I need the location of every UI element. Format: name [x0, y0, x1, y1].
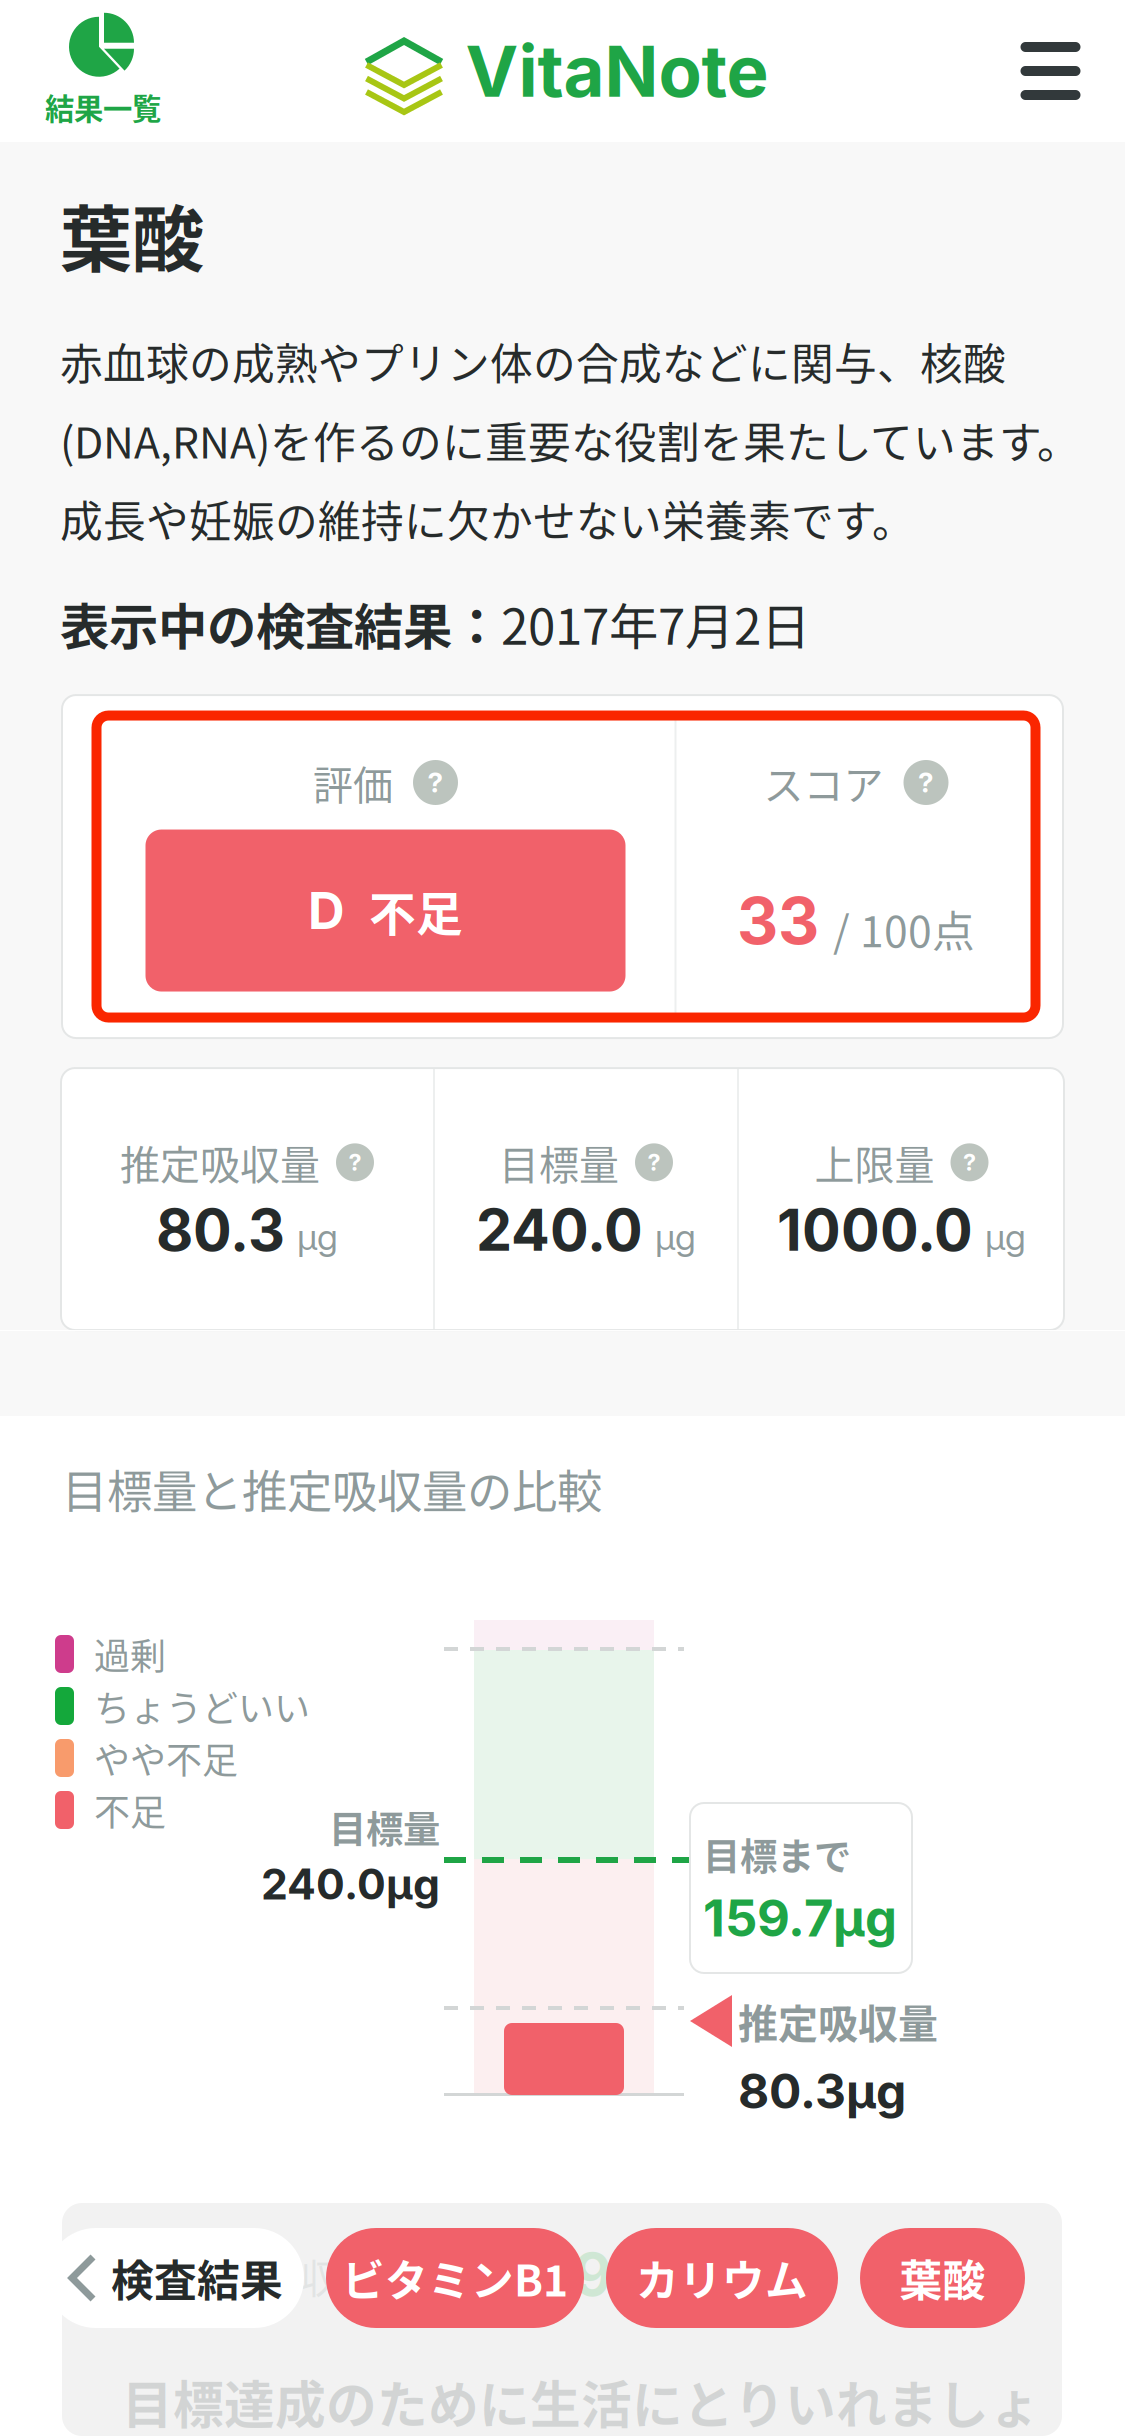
- staticText: 結果一覧: [45, 86, 161, 128]
- staticText: 80.3: [156, 1195, 285, 1265]
- staticText: 評価: [313, 753, 393, 811]
- staticText: 目標量と推定吸収量の比較: [62, 1456, 602, 1522]
- staticText: 葉酸: [899, 2247, 985, 2309]
- staticText: ?: [963, 1148, 976, 1176]
- staticText: 1000.0: [777, 1195, 973, 1265]
- staticText: 不足: [94, 1784, 166, 1836]
- button[interactable]: ビタミンB1: [326, 2228, 584, 2328]
- staticText: 成長や妊娠の維持に欠かせない栄養素です。: [60, 488, 915, 550]
- staticText: 目標量: [499, 1133, 619, 1191]
- staticText: ?: [348, 1148, 361, 1176]
- button[interactable]: Menu: [988, 0, 1113, 142]
- staticText: 159.7μg: [703, 1887, 897, 1949]
- button[interactable]: 結果一覧: [0, 0, 206, 142]
- staticText: ビタミンB1: [342, 2247, 568, 2309]
- button[interactable]: VitaNote: [360, 0, 780, 142]
- staticText: 赤血球の成熟やプリン体の合成などに関与、核酸: [60, 330, 1006, 392]
- staticText: 2017年7月2日: [501, 588, 810, 659]
- staticText: 表示中の検査結果：: [60, 588, 501, 659]
- staticText: / 100点: [833, 898, 975, 960]
- button[interactable]: カリウム: [606, 2228, 838, 2328]
- staticText: 229: [500, 2239, 612, 2310]
- staticText: μg: [985, 1215, 1026, 1259]
- staticText: 80.3μg: [738, 2062, 906, 2120]
- staticText: カリウム: [636, 2247, 808, 2309]
- staticText: やや不足: [94, 1732, 238, 1784]
- staticText: 過剰: [94, 1628, 166, 1680]
- staticText: μg: [655, 1215, 696, 1259]
- staticText: 不足: [369, 877, 463, 944]
- staticText: 上限量: [814, 1133, 934, 1191]
- staticText: 葉酸: [60, 182, 204, 286]
- staticText: 33: [737, 882, 819, 959]
- staticText: 240.0: [476, 1195, 643, 1265]
- staticText: ?: [427, 766, 443, 799]
- staticText: 推定吸収量: [738, 1992, 938, 2050]
- staticText: 検査結果: [111, 2247, 283, 2309]
- staticText: 目標達成のために生活にとりいれましょ: [122, 2365, 1040, 2436]
- staticText: VitaNote: [465, 28, 768, 114]
- staticText: 目標量: [329, 1800, 440, 1854]
- staticText: 推定吸収量: [120, 1133, 320, 1191]
- staticText: ちょうどいい: [94, 1680, 310, 1732]
- button[interactable]: 検査結果: [46, 2228, 304, 2328]
- staticText: ?: [918, 766, 934, 799]
- button[interactable]: 葉酸: [860, 2228, 1025, 2328]
- staticText: 目標まで: [703, 1827, 851, 1881]
- staticText: 推定吸収量: [180, 2247, 380, 2305]
- staticText: (DNA,RNA)を作るのに重要な役割を果たしています。: [60, 409, 1080, 471]
- staticText: ?: [647, 1148, 660, 1176]
- staticText: 240.0μg: [261, 1858, 440, 1910]
- staticText: スコア: [763, 753, 883, 811]
- staticText: μg: [297, 1215, 338, 1259]
- staticText: D: [308, 880, 345, 941]
